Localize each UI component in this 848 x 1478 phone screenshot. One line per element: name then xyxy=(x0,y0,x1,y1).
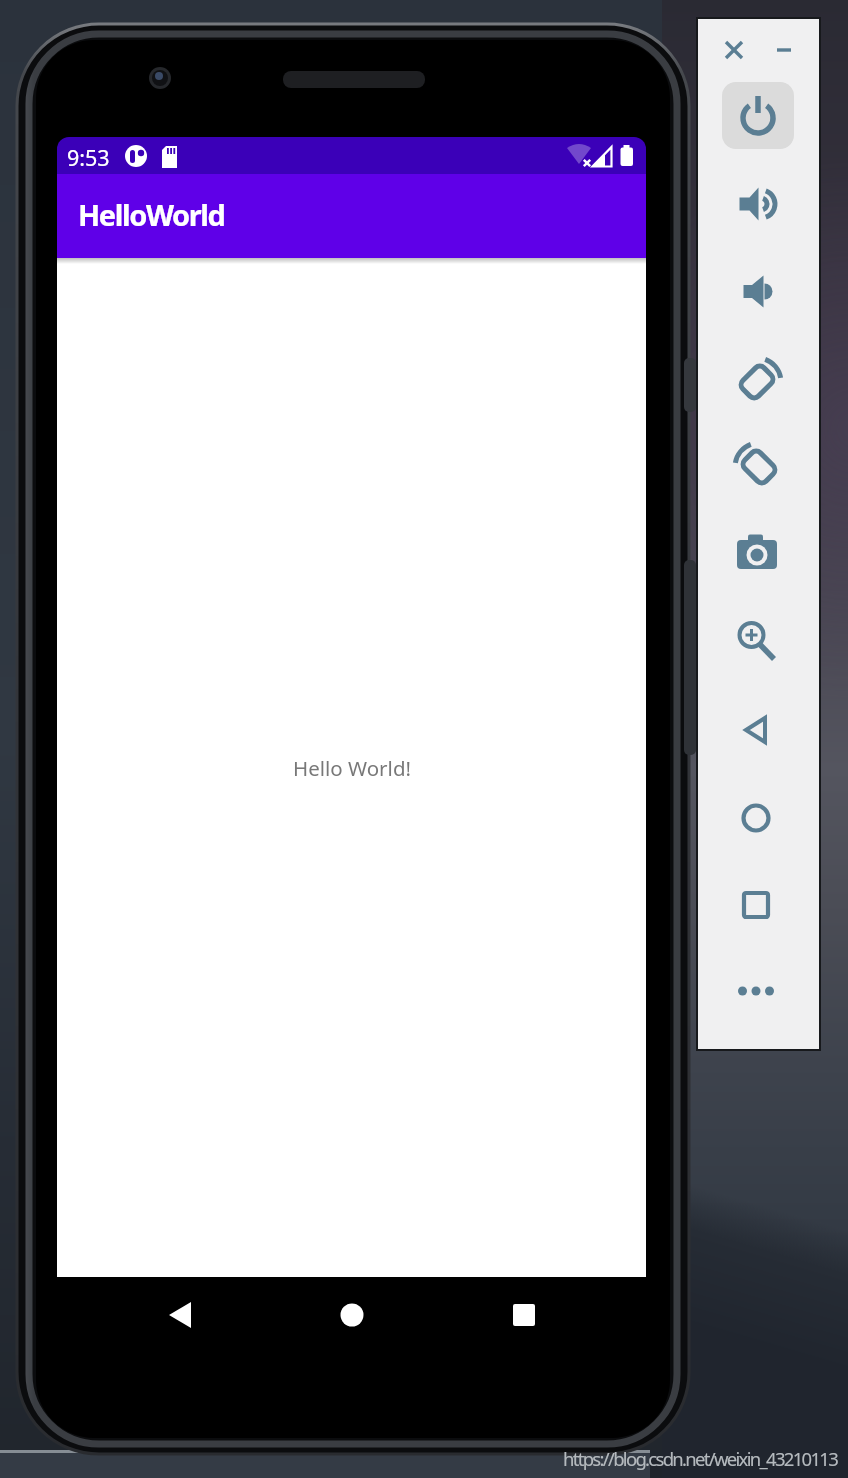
staticText: https://blog.csdn.net/weixin_43210113 xyxy=(563,1446,838,1471)
button[interactable] xyxy=(156,1291,204,1339)
button[interactable] xyxy=(732,706,780,754)
button[interactable] xyxy=(732,267,780,315)
button[interactable] xyxy=(732,967,780,1015)
button[interactable] xyxy=(500,1291,548,1339)
button[interactable] xyxy=(766,33,802,69)
button[interactable] xyxy=(328,1291,376,1339)
button[interactable] xyxy=(722,82,794,149)
button[interactable] xyxy=(733,530,781,578)
button[interactable] xyxy=(732,881,780,929)
button[interactable] xyxy=(732,179,780,227)
staticText: 9:53 xyxy=(67,143,110,172)
button[interactable] xyxy=(734,442,782,490)
staticText: HelloWorld xyxy=(78,195,225,234)
button[interactable] xyxy=(716,32,752,68)
staticText: Hello World! xyxy=(293,754,411,782)
button[interactable] xyxy=(732,616,780,664)
button[interactable] xyxy=(732,794,780,842)
button[interactable] xyxy=(734,357,782,405)
